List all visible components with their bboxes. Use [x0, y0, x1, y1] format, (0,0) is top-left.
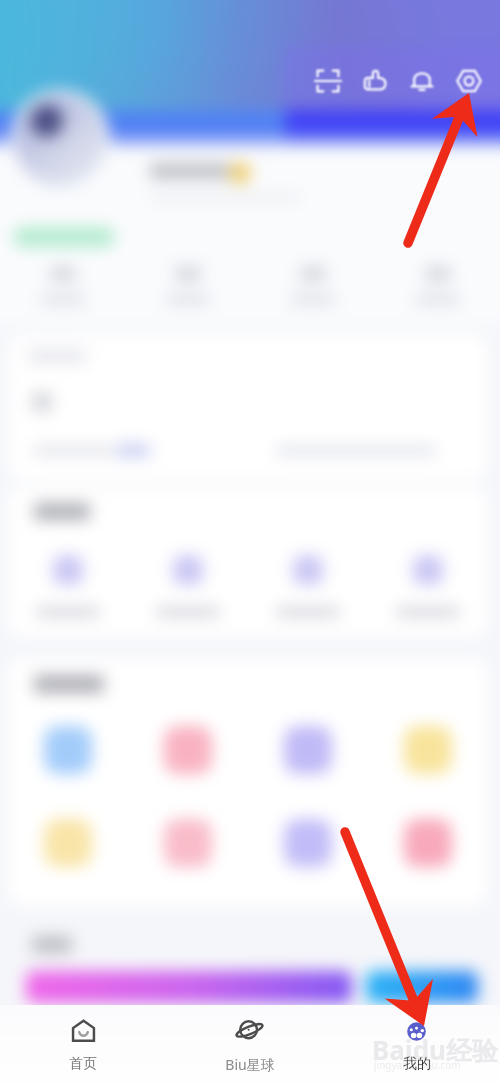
staticText: 我的 — [403, 1055, 431, 1073]
button[interactable]: 首页 — [0, 1005, 166, 1073]
button[interactable]: Biu星球 — [166, 1005, 333, 1074]
staticText: Baidu经验 — [372, 1032, 498, 1068]
staticText: 首页 — [69, 1055, 97, 1073]
button[interactable]: Like — [351, 57, 398, 104]
button[interactable]: Notifications — [398, 57, 445, 104]
staticText: Biu星球 — [225, 1055, 275, 1074]
button[interactable]: 我的 — [333, 1005, 500, 1073]
staticText: jingyan.baidu.com — [374, 1058, 461, 1072]
button[interactable]: Scan — [304, 57, 351, 104]
button[interactable]: Settings — [445, 57, 492, 104]
